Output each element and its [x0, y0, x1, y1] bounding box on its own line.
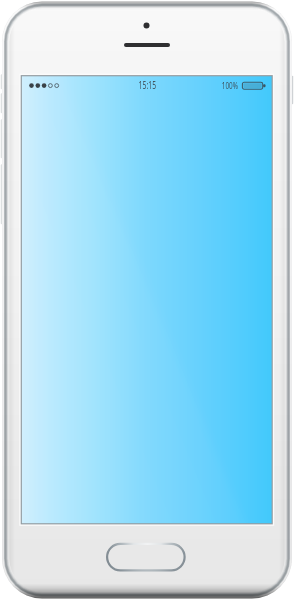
staticText: 15:15: [138, 78, 156, 92]
staticText: 100%: [221, 79, 238, 92]
